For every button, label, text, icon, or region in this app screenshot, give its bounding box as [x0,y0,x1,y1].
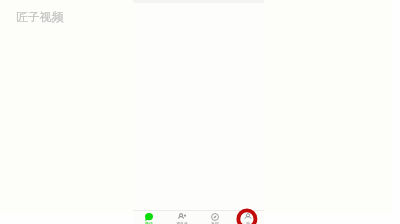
staticText: 微信 [145,221,153,224]
button[interactable]: 我 [231,211,264,224]
staticText: 我 [246,221,250,224]
other: 我 [244,213,252,221]
button[interactable]: 发现 [198,211,231,224]
button[interactable]: 微信 [133,211,165,224]
other: 微信 [145,213,153,221]
other: 通讯录 [178,213,186,221]
staticText: 发现 [211,221,219,224]
button[interactable]: 通讯录 [165,211,198,224]
staticText: 通讯录 [176,221,188,224]
other: 发现 [211,213,219,221]
staticText: 匠子视频 [16,10,64,25]
